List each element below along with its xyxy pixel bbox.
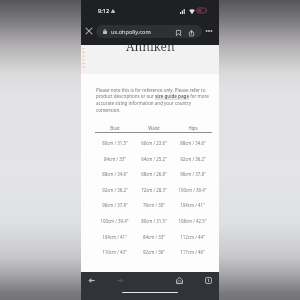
staticText: 104cm / 41" — [180, 202, 205, 208]
staticText: 88cm / 34.6" — [102, 171, 128, 177]
button[interactable]: More options — [203, 25, 215, 37]
staticText: 80cm / 31.5" — [102, 140, 128, 146]
staticText: 100cm / 39.4" — [178, 187, 207, 193]
button[interactable]: Forward — [113, 273, 127, 287]
staticText: 68cm / 26.8" — [141, 171, 167, 177]
staticText: Hips — [188, 125, 198, 131]
staticText: 9:12 — [98, 7, 110, 15]
staticText: 60cm / 23.6" — [141, 140, 167, 146]
staticText: 117cm / 46" — [180, 249, 205, 255]
staticText: 104cm / 41" — [102, 234, 127, 240]
button[interactable]: Bookmark — [173, 27, 184, 38]
staticText: 110cm / 43" — [102, 249, 127, 255]
staticText: Anniken — [126, 38, 175, 54]
staticText: 84cm / 33" — [143, 234, 165, 240]
staticText: 76cm / 30" — [143, 202, 165, 208]
staticText: us.ohpolly.com — [111, 28, 151, 36]
staticText: 112cm / 44" — [180, 234, 205, 240]
button[interactable]: Back — [84, 273, 98, 287]
button[interactable]: Close tab — [83, 25, 95, 37]
staticText: 92cm / 36.2" — [180, 156, 206, 162]
staticText: Bust — [110, 125, 120, 131]
staticText: 96cm / 37.8" — [102, 202, 128, 208]
staticText: 72cm / 28.3" — [141, 187, 167, 193]
staticText: 92cm / 36" — [143, 249, 165, 255]
button[interactable]: Home — [172, 273, 186, 287]
button[interactable]: Share — [186, 27, 197, 38]
staticText: Waist — [148, 125, 160, 131]
staticText: 64cm / 25.2" — [141, 156, 167, 162]
button[interactable]: us.ohpolly.com — [96, 25, 202, 38]
staticText: 108cm / 42.5" — [178, 218, 207, 224]
staticText: 80cm / 31.5" — [141, 218, 167, 224]
staticText: 100cm / 39.4" — [100, 218, 129, 224]
staticText: 92cm / 36.2" — [102, 187, 128, 193]
button[interactable]: Tabs — [201, 273, 215, 287]
staticText: 96cm / 37.8" — [180, 171, 206, 177]
staticText: 88cm / 34.6" — [180, 140, 206, 146]
staticText: 84cm / 33" — [104, 156, 126, 162]
staticText: Please note this is for reference only. … — [96, 87, 210, 113]
